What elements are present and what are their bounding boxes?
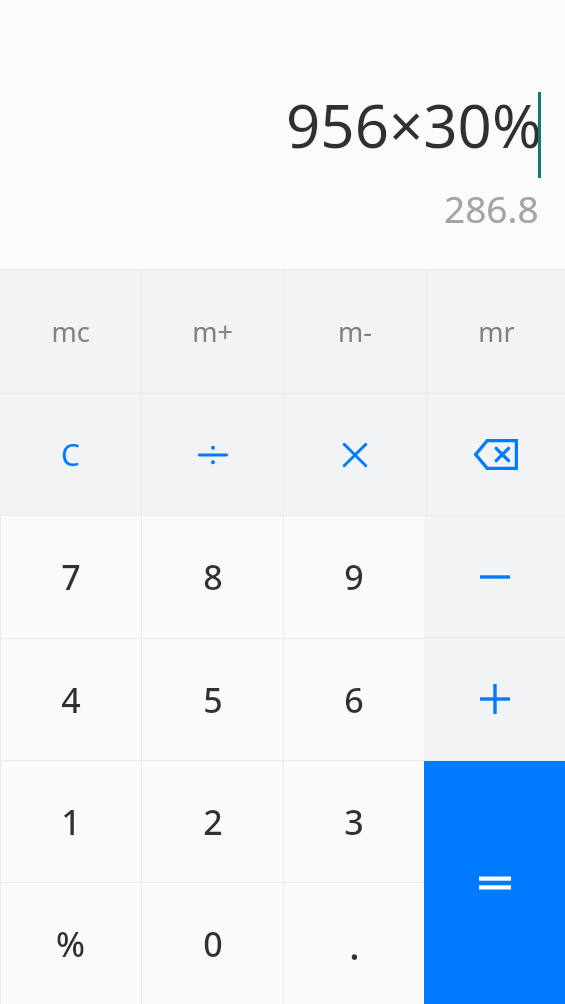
button[interactable]: m+	[142, 270, 283, 393]
button[interactable]: Clear	[0, 394, 141, 515]
button[interactable]: 4	[0, 639, 141, 760]
button[interactable]: 9	[284, 516, 424, 638]
button[interactable]: 2	[142, 761, 283, 882]
button[interactable]: Divide	[142, 394, 283, 515]
staticText: 5	[203, 677, 223, 723]
button[interactable]: Equals	[424, 761, 565, 1004]
button[interactable]: 0	[142, 883, 283, 1004]
staticText: 1	[61, 799, 81, 845]
button[interactable]: m-	[284, 270, 426, 393]
button[interactable]: Backspace	[427, 394, 565, 515]
button[interactable]: 6	[284, 639, 424, 760]
button[interactable]: 5	[142, 639, 283, 760]
staticText: 3	[344, 799, 364, 845]
button[interactable]: Subtract	[424, 516, 565, 637]
staticText: mr	[478, 313, 515, 350]
staticText: 2	[203, 799, 223, 845]
button[interactable]: .	[284, 883, 424, 1004]
staticText: 6	[344, 677, 364, 723]
button[interactable]: mr	[427, 270, 565, 393]
staticText: .	[349, 917, 360, 971]
button[interactable]: 7	[0, 516, 141, 638]
staticText: 8	[203, 554, 223, 600]
staticText: m+	[192, 313, 233, 350]
button[interactable]: Add	[424, 638, 565, 760]
staticText: 7	[61, 554, 81, 600]
staticText: 4	[61, 677, 81, 723]
button[interactable]: 1	[0, 761, 141, 882]
button[interactable]: Multiply	[284, 394, 426, 515]
button[interactable]: 3	[284, 761, 424, 882]
staticText: 9	[344, 554, 364, 600]
button[interactable]: 8	[142, 516, 283, 638]
button[interactable]: mc	[0, 270, 141, 393]
staticText: mc	[51, 313, 90, 350]
staticText: 286.8	[444, 183, 539, 233]
staticText: %	[56, 921, 85, 967]
button[interactable]: %	[0, 883, 141, 1004]
staticText: 0	[203, 921, 223, 967]
staticText: 956×30%	[286, 84, 542, 166]
staticText: m-	[338, 313, 372, 350]
staticText: C	[61, 434, 80, 475]
